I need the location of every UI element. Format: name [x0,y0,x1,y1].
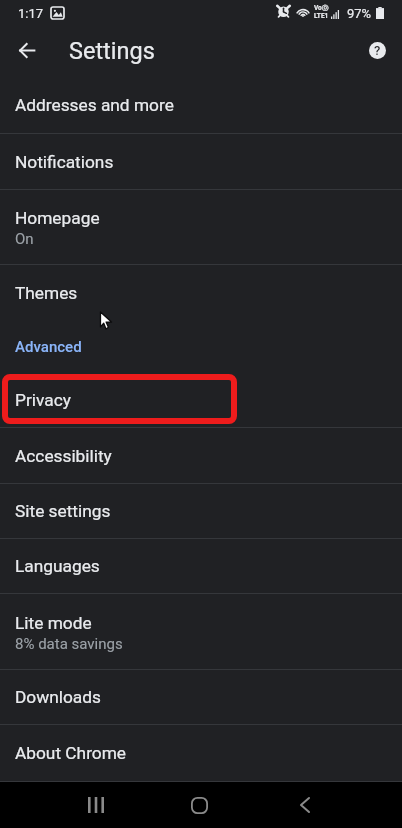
button[interactable]: Homepage [0,190,402,264]
staticText: Site settings [15,501,111,521]
button[interactable]: Notifications [0,134,402,189]
staticText: Advanced [15,338,82,356]
staticText: Themes [15,283,78,303]
button[interactable]: About Chrome [0,725,402,781]
button[interactable]: Back [7,30,47,70]
staticText: 1:17 [18,6,44,21]
staticText: Downloads [15,687,101,707]
staticText: Lite mode [15,613,92,633]
button[interactable]: Privacy [0,373,402,427]
staticText: Settings [69,37,155,65]
staticText: ? [374,43,381,58]
button[interactable]: Lite mode [0,594,402,669]
staticText: LTE1 [314,12,329,20]
button[interactable]: Languages [0,539,402,593]
staticText: 8% data savings [15,635,123,653]
staticText: Accessibility [15,446,112,466]
staticText: Notifications [15,152,114,172]
button[interactable]: Recent apps [72,782,120,828]
staticText: Addresses and more [15,95,174,115]
button[interactable]: Help [357,30,397,70]
button[interactable]: Accessibility [0,428,402,483]
button[interactable]: Addresses and more [0,77,402,133]
staticText: VoⓄ [314,4,329,12]
staticText: Privacy [15,390,71,410]
button[interactable]: Site settings [0,484,402,538]
staticText: Languages [15,556,100,576]
button[interactable]: Themes [0,265,402,321]
staticText: About Chrome [15,743,127,763]
button[interactable]: Home [175,782,223,828]
staticText: On [15,230,34,248]
staticText: 97% [347,6,372,21]
button[interactable]: Downloads [0,670,402,724]
button[interactable]: Back [281,782,329,828]
staticText: Homepage [15,208,100,228]
